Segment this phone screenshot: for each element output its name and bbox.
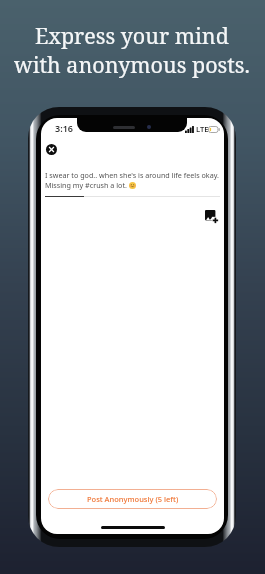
staticText: I swear to god.. when she's is around li… (45, 170, 219, 180)
button[interactable]: Post Anonymously (5 left) (48, 489, 217, 509)
staticText: Post Anonymously (5 left) (87, 494, 179, 504)
staticText: 3:16 (55, 122, 73, 134)
staticText: with anonymous posts. (14, 50, 250, 79)
button[interactable]: Add image (205, 210, 218, 223)
staticText: Missing my #crush a lot. (45, 180, 127, 190)
button[interactable]: Close (42, 140, 60, 158)
staticText: LTE (196, 124, 209, 134)
staticText: Express your mind (35, 21, 229, 50)
